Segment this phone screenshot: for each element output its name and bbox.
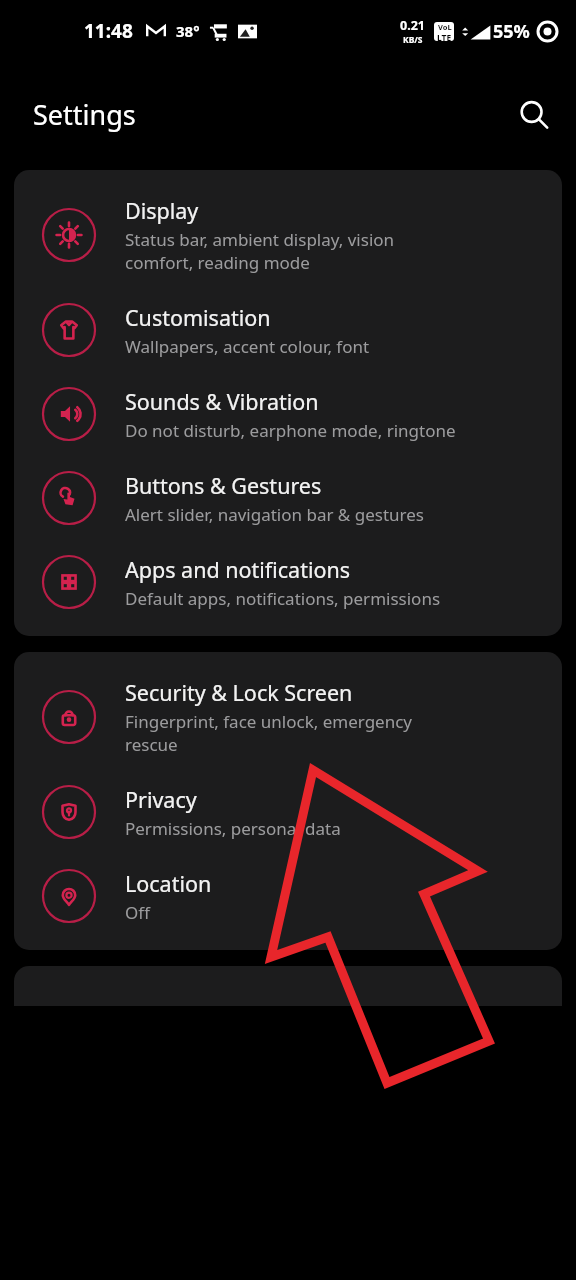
- staticText: 11:48: [84, 18, 133, 44]
- staticText: 38°: [176, 21, 200, 41]
- staticText: Privacy: [125, 785, 197, 814]
- staticText: Customisation: [125, 303, 271, 332]
- staticText: Security & Lock Screen: [125, 678, 353, 707]
- staticText: Off: [125, 901, 150, 924]
- staticText: Do not disturb, earphone mode, ringtone: [125, 419, 456, 442]
- button[interactable]: Customisation: [14, 288, 562, 372]
- button[interactable]: Sounds & Vibration: [14, 372, 562, 456]
- staticText: KB/S: [403, 34, 423, 46]
- button[interactable]: Buttons & Gestures: [14, 456, 562, 540]
- button[interactable]: Display: [14, 170, 562, 288]
- staticText: 0.21: [400, 17, 425, 34]
- button[interactable]: Apps and notifications: [14, 540, 562, 636]
- staticText: Status bar, ambient display, vision comf…: [125, 228, 395, 274]
- staticText: 55%: [493, 19, 530, 44]
- staticText: Settings: [33, 96, 136, 133]
- staticText: LTE: [437, 32, 452, 41]
- staticText: Apps and notifications: [125, 555, 351, 584]
- button[interactable]: Search: [506, 87, 562, 143]
- button[interactable]: [14, 966, 562, 1006]
- staticText: Alert slider, navigation bar & gestures: [125, 503, 424, 526]
- staticText: Permissions, personal data: [125, 817, 341, 840]
- button[interactable]: Security & Lock Screen: [14, 652, 562, 770]
- staticText: Buttons & Gestures: [125, 471, 322, 500]
- staticText: Default apps, notifications, permissions: [125, 587, 441, 610]
- staticText: Wallpapers, accent colour, font: [125, 335, 370, 358]
- staticText: Sounds & Vibration: [125, 387, 319, 416]
- staticText: Fingerprint, face unlock, emergency resc…: [125, 710, 413, 756]
- staticText: VoL: [438, 22, 452, 32]
- button[interactable]: Privacy: [14, 770, 562, 854]
- staticText: Display: [125, 196, 199, 225]
- button[interactable]: Location: [14, 854, 562, 950]
- staticText: Location: [125, 869, 212, 898]
